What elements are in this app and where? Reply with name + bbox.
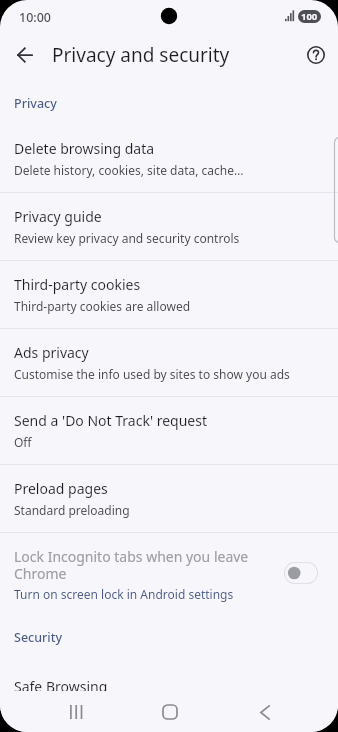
- staticText: Privacy guide: [14, 207, 102, 226]
- staticText: Third-party cookies are allowed: [14, 298, 191, 314]
- button[interactable]: Back: [243, 690, 287, 732]
- staticText: Privacy and security: [52, 42, 230, 68]
- button[interactable]: Recents: [54, 690, 98, 732]
- button[interactable]: Help: [300, 39, 332, 71]
- button[interactable]: Home: [148, 690, 192, 732]
- staticText: Turn on screen lock in Android settings: [14, 586, 234, 602]
- staticText: Standard preloading: [14, 502, 130, 518]
- button[interactable]: Ads privacy: [0, 329, 338, 396]
- staticText: Third-party cookies: [14, 275, 141, 294]
- staticText: 100: [301, 10, 318, 23]
- button[interactable]: Lock Incognito tabs toggle: [284, 562, 318, 584]
- button[interactable]: Safe Browsing: [0, 663, 338, 730]
- staticText: Preload pages: [14, 479, 108, 498]
- button[interactable]: Delete browsing data: [0, 125, 338, 192]
- staticText: Off: [14, 434, 32, 450]
- button[interactable]: Lock Incognito tabs when you leave Chrom…: [0, 533, 338, 611]
- staticText: Safe Browsing: [14, 677, 108, 696]
- staticText: Review key privacy and security controls: [14, 230, 240, 246]
- button[interactable]: Send a 'Do Not Track' request: [0, 397, 338, 464]
- staticText: Lock Incognito tabs when you leave Chrom…: [14, 547, 272, 583]
- staticText: Send a 'Do Not Track' request: [14, 411, 208, 430]
- staticText: Privacy: [14, 95, 57, 112]
- staticText: Customise the info used by sites to show…: [14, 366, 290, 382]
- button[interactable]: Back: [8, 39, 40, 71]
- button[interactable]: Third-party cookies: [0, 261, 338, 328]
- staticText: Delete browsing data: [14, 139, 155, 158]
- button[interactable]: Preload pages: [0, 465, 338, 532]
- staticText: Standard protection: [14, 700, 127, 716]
- staticText: Security: [14, 629, 63, 646]
- button[interactable]: Privacy guide: [0, 193, 338, 260]
- staticText: Delete history, cookies, site data, cach…: [14, 162, 244, 178]
- staticText: 10:00: [19, 9, 52, 26]
- staticText: Ads privacy: [14, 343, 89, 362]
